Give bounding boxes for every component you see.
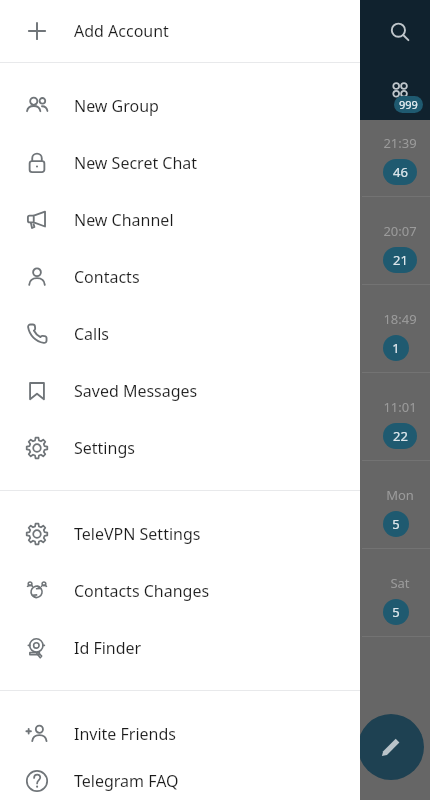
button[interactable]: Search bbox=[382, 14, 418, 50]
staticText: Saved Messages bbox=[74, 380, 198, 402]
button[interactable]: New Group bbox=[0, 77, 360, 134]
button[interactable]: Contacts bbox=[0, 248, 360, 305]
staticText: New Secret Chat bbox=[74, 152, 198, 174]
button[interactable]: Telegram FAQ bbox=[0, 762, 360, 800]
staticText: 18:49 bbox=[383, 310, 417, 328]
staticText: 11:01 bbox=[383, 398, 417, 416]
staticText: TeleVPN Settings bbox=[74, 523, 201, 545]
button[interactable]: TeleVPN Settings bbox=[0, 505, 360, 562]
staticText: Telegram FAQ bbox=[74, 770, 179, 792]
staticText: 999 bbox=[399, 97, 418, 112]
button[interactable]: Contacts Changes bbox=[0, 562, 360, 619]
staticText: 20:07 bbox=[383, 222, 417, 240]
button[interactable]: New Channel bbox=[0, 191, 360, 248]
button[interactable]: Chat folders bbox=[382, 72, 418, 108]
staticText: Calls bbox=[74, 323, 110, 345]
staticText: Contacts Changes bbox=[74, 580, 210, 602]
staticText: 5 bbox=[392, 603, 400, 621]
button[interactable]: Add Account bbox=[0, 0, 360, 62]
button[interactable]: Saved Messages bbox=[0, 362, 360, 419]
button[interactable]: Invite Friends bbox=[0, 705, 360, 762]
staticText: 46 bbox=[393, 163, 408, 181]
staticText: Sat bbox=[390, 574, 410, 592]
staticText: Settings bbox=[74, 437, 135, 459]
staticText: 21:39 bbox=[383, 134, 417, 152]
staticText: New Channel bbox=[74, 209, 174, 231]
button[interactable]: Id Finder bbox=[0, 619, 360, 676]
staticText: Id Finder bbox=[74, 637, 142, 659]
staticText: 21 bbox=[393, 251, 408, 269]
staticText: Contacts bbox=[74, 266, 140, 288]
staticText: Invite Friends bbox=[74, 723, 176, 745]
staticText: 22 bbox=[393, 427, 408, 445]
button[interactable]: Settings bbox=[0, 419, 360, 476]
staticText: New Group bbox=[74, 95, 159, 117]
staticText: 1 bbox=[392, 339, 400, 357]
staticText: Add Account bbox=[74, 20, 169, 42]
button[interactable]: New message bbox=[358, 714, 424, 780]
staticText: 5 bbox=[392, 515, 400, 533]
staticText: Mon bbox=[386, 486, 414, 504]
button[interactable]: New Secret Chat bbox=[0, 134, 360, 191]
button[interactable]: Calls bbox=[0, 305, 360, 362]
